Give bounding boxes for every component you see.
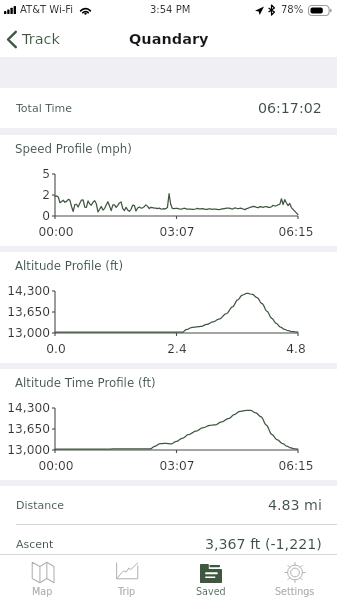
staticText: 03:07	[137, 459, 217, 473]
staticText: Settings	[275, 586, 315, 597]
staticText: 3:54 PM	[150, 4, 191, 16]
staticText: 14,300	[0, 401, 50, 415]
staticText: 00:00	[16, 459, 96, 473]
staticText: 13,000	[0, 443, 50, 457]
staticText: Altitude Profile (ft)	[15, 259, 124, 273]
staticText: 06:15	[256, 225, 336, 239]
staticText: Map	[32, 586, 53, 597]
staticText: Saved	[196, 586, 226, 597]
staticText: Trip	[118, 586, 136, 597]
staticText: Total Time	[16, 102, 73, 115]
staticText: 2.4	[137, 342, 217, 356]
button[interactable]: Saved	[169, 554, 253, 600]
staticText: 78%	[281, 4, 304, 16]
staticText: 5	[0, 167, 50, 181]
staticText: 00:00	[16, 225, 96, 239]
button[interactable]: Map	[0, 554, 85, 600]
staticText: 4.83 mi	[268, 497, 322, 514]
button[interactable]: Trip	[85, 554, 169, 600]
staticText: AT&T Wi-Fi	[20, 4, 74, 16]
staticText: Altitude Time Profile (ft)	[15, 376, 156, 390]
button[interactable]: Settings	[253, 554, 337, 600]
staticText: Distance	[16, 499, 65, 512]
staticText: 14,300	[0, 284, 50, 298]
button[interactable]: Track	[0, 31, 70, 48]
staticText: 0.0	[16, 342, 96, 356]
button[interactable]: Ascent	[0, 525, 337, 563]
staticText: Speed Profile (mph)	[15, 142, 132, 156]
staticText: 03:07	[137, 225, 217, 239]
button[interactable]: Distance	[0, 486, 337, 524]
staticText: Track	[22, 31, 60, 48]
staticText: 13,000	[0, 326, 50, 340]
staticText: 3,367 ft (-1,221)	[205, 536, 322, 553]
button[interactable]: Total Time	[0, 88, 337, 128]
staticText: Ascent	[16, 538, 54, 551]
staticText: 06:17:02	[258, 100, 322, 117]
staticText: 4.8	[256, 342, 336, 356]
staticText: 2	[0, 188, 50, 202]
staticText: 13,650	[0, 305, 50, 319]
staticText: Quandary	[129, 31, 209, 48]
staticText: 13,650	[0, 422, 50, 436]
staticText: 0	[0, 209, 50, 223]
staticText: 06:15	[256, 459, 336, 473]
